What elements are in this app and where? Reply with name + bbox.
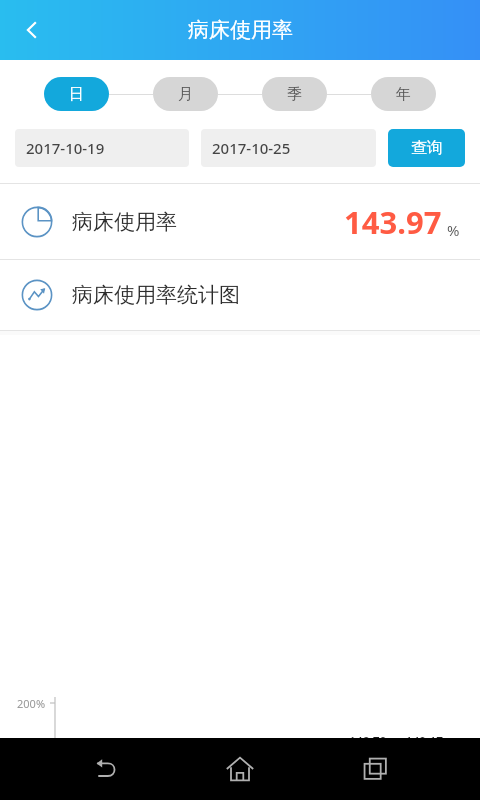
staticText: 查询 — [411, 138, 443, 158]
staticText: 年 — [396, 85, 411, 104]
staticText: 病床使用率统计图 — [72, 282, 240, 308]
button[interactable]: 季 — [262, 77, 327, 111]
button[interactable]: 病床使用率 — [0, 184, 480, 259]
staticText: 季 — [287, 85, 302, 104]
staticText: % — [447, 220, 460, 240]
button[interactable]: 日 — [44, 77, 109, 111]
button[interactable]: 月 — [153, 77, 218, 111]
button[interactable]: 年 — [371, 77, 436, 111]
staticText: 143.97 — [344, 201, 442, 243]
button[interactable]: 查询 — [388, 129, 465, 167]
button[interactable]: Home — [209, 738, 271, 800]
button[interactable]: 2017-10-25 — [201, 129, 376, 167]
staticText: 2017-10-25 — [212, 138, 291, 158]
staticText: 月 — [178, 85, 193, 104]
staticText: 病床使用率 — [188, 17, 293, 43]
staticText: 病床使用率 — [72, 209, 177, 235]
button[interactable]: 病床使用率统计图 — [0, 260, 480, 330]
staticText: 日 — [69, 85, 84, 104]
button[interactable]: Back — [74, 738, 136, 800]
button[interactable]: 2017-10-19 — [15, 129, 189, 167]
button[interactable]: Recent apps — [345, 738, 407, 800]
button[interactable]: Back — [8, 6, 56, 54]
staticText: 2017-10-19 — [26, 138, 105, 158]
